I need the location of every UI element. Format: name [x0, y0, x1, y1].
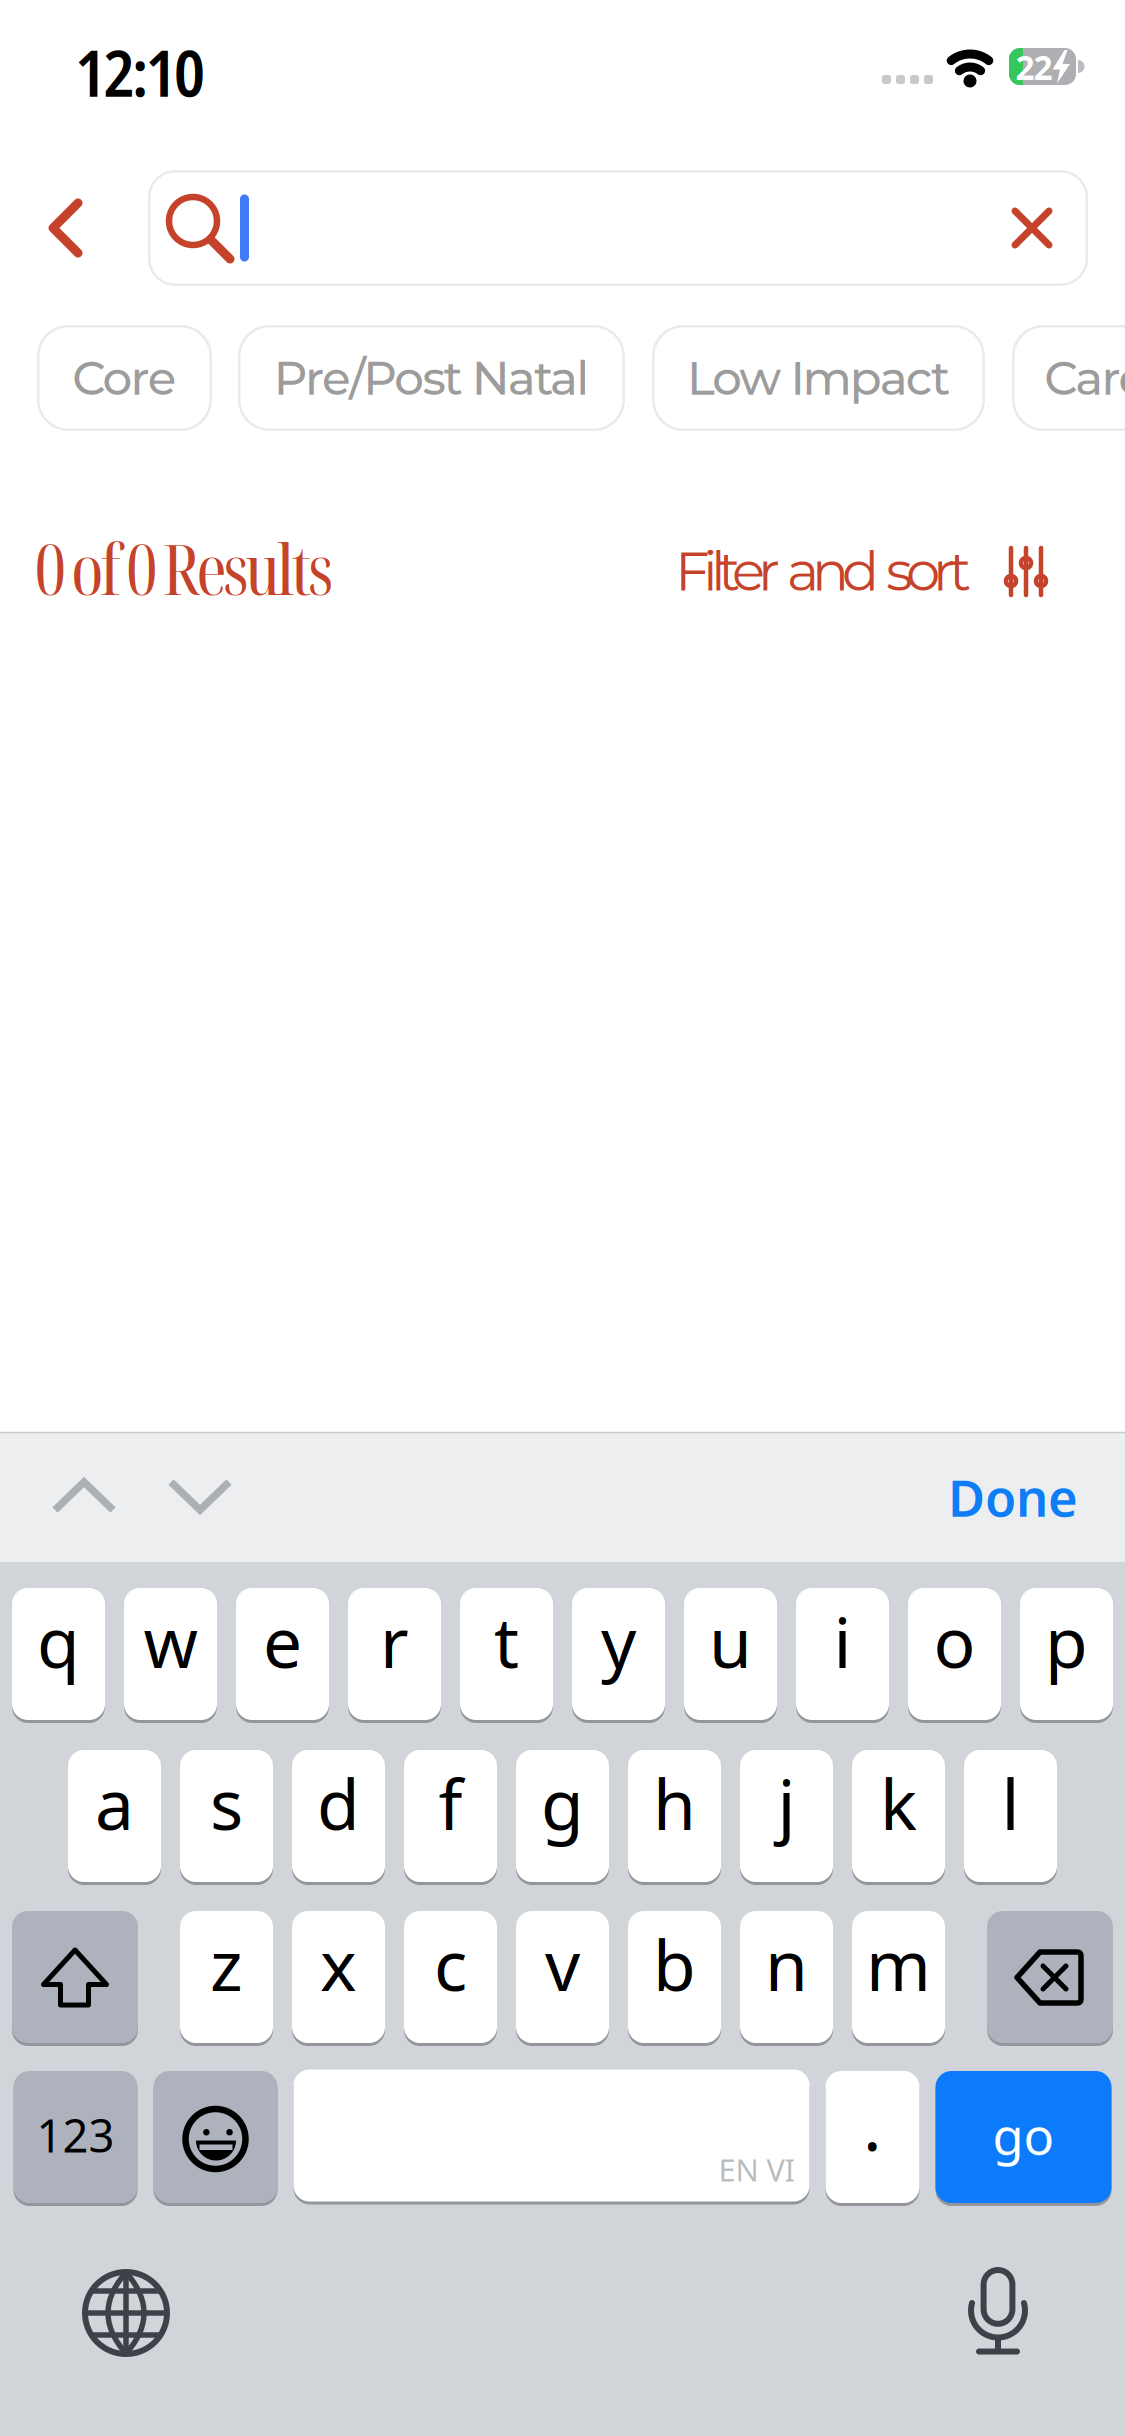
button[interactable]: Next keyboard	[76, 2263, 176, 2363]
staticText: Done	[948, 1463, 1078, 1531]
button[interactable]: Search	[148, 170, 1088, 286]
button[interactable]: e	[236, 1586, 329, 1721]
staticText: Cardio	[1044, 350, 1125, 406]
staticText: e	[263, 1595, 302, 1687]
button[interactable]: c	[404, 1909, 497, 2044]
staticText: c	[434, 1918, 467, 2010]
button[interactable]: z	[180, 1909, 273, 2044]
button[interactable]: x	[292, 1909, 385, 2044]
staticText: go	[992, 2101, 1054, 2169]
staticText: s	[210, 1757, 243, 1849]
button[interactable]: u	[684, 1586, 777, 1721]
button[interactable]: v	[516, 1909, 609, 2044]
staticText: k	[880, 1757, 917, 1849]
button[interactable]: Space	[293, 2069, 809, 2204]
staticText: m	[866, 1918, 931, 2010]
staticText: q	[37, 1595, 80, 1687]
button[interactable]: a	[68, 1748, 161, 1883]
button[interactable]: l	[964, 1748, 1057, 1883]
button[interactable]: Dictate	[948, 2262, 1048, 2362]
button[interactable]: Shift	[12, 1909, 138, 2044]
staticText: EN VI	[718, 2149, 794, 2190]
staticText: g	[541, 1757, 584, 1849]
button[interactable]: f	[404, 1748, 497, 1883]
staticText: h	[653, 1757, 696, 1849]
button[interactable]: j	[740, 1748, 833, 1883]
staticText: n	[765, 1918, 808, 2010]
staticText: 0 of 0 Results	[35, 521, 333, 615]
button[interactable]: h	[628, 1748, 721, 1883]
staticText: l	[1001, 1757, 1019, 1849]
button[interactable]: b	[628, 1909, 721, 2044]
staticText: y	[601, 1595, 636, 1687]
button[interactable]: y	[572, 1586, 665, 1721]
button[interactable]: o	[908, 1586, 1001, 1721]
staticText: o	[933, 1595, 975, 1687]
button[interactable]: s	[180, 1748, 273, 1883]
staticText: .	[863, 2078, 882, 2170]
staticText: a	[95, 1757, 134, 1849]
button[interactable]: m	[852, 1909, 945, 2044]
staticText: Pre/Post Natal	[274, 350, 589, 406]
staticText: x	[320, 1918, 357, 2010]
staticText: 123	[36, 2105, 114, 2165]
staticText: j	[777, 1757, 795, 1849]
button[interactable]: w	[124, 1586, 217, 1721]
staticText: b	[653, 1918, 696, 2010]
staticText: 22	[1015, 45, 1052, 89]
button[interactable]: r	[348, 1586, 441, 1721]
button[interactable]: Core	[37, 325, 212, 431]
button[interactable]: 123	[13, 2069, 137, 2204]
button[interactable]: k	[852, 1748, 945, 1883]
staticText: t	[494, 1595, 519, 1687]
button[interactable]: d	[292, 1748, 385, 1883]
staticText: i	[833, 1595, 851, 1687]
staticText: d	[317, 1757, 360, 1849]
staticText: f	[438, 1757, 462, 1849]
button[interactable]: Back	[35, 183, 95, 273]
button[interactable]: i	[796, 1586, 889, 1721]
staticText: Core	[72, 350, 177, 406]
staticText: Low Impact	[687, 350, 950, 406]
button[interactable]: Pre/Post Natal	[238, 325, 625, 431]
button[interactable]: q	[12, 1586, 105, 1721]
staticText: w	[143, 1595, 197, 1687]
button[interactable]: Emoji	[153, 2069, 277, 2204]
button[interactable]: .	[825, 2069, 919, 2204]
button[interactable]: p	[1020, 1586, 1113, 1721]
staticText: Filter and sort	[675, 538, 971, 604]
button[interactable]: g	[516, 1748, 609, 1883]
staticText: r	[380, 1595, 409, 1687]
staticText: v	[545, 1918, 580, 2010]
button[interactable]: go	[935, 2069, 1111, 2204]
button[interactable]: t	[460, 1586, 553, 1721]
button[interactable]: Filter and sort	[675, 538, 1049, 604]
button[interactable]: Low Impact	[652, 325, 985, 431]
button[interactable]: Done	[948, 1463, 1078, 1531]
button[interactable]: Next field	[165, 1471, 235, 1521]
button[interactable]: Delete	[987, 1909, 1113, 2044]
staticText: 12:10	[75, 28, 205, 116]
button[interactable]: Cardio	[1012, 325, 1125, 431]
staticText: z	[210, 1918, 243, 2010]
button[interactable]: n	[740, 1909, 833, 2044]
staticText: p	[1045, 1595, 1088, 1687]
button[interactable]: Clear search text	[992, 188, 1072, 268]
button[interactable]: Previous field	[49, 1471, 119, 1521]
staticText: u	[709, 1595, 752, 1687]
